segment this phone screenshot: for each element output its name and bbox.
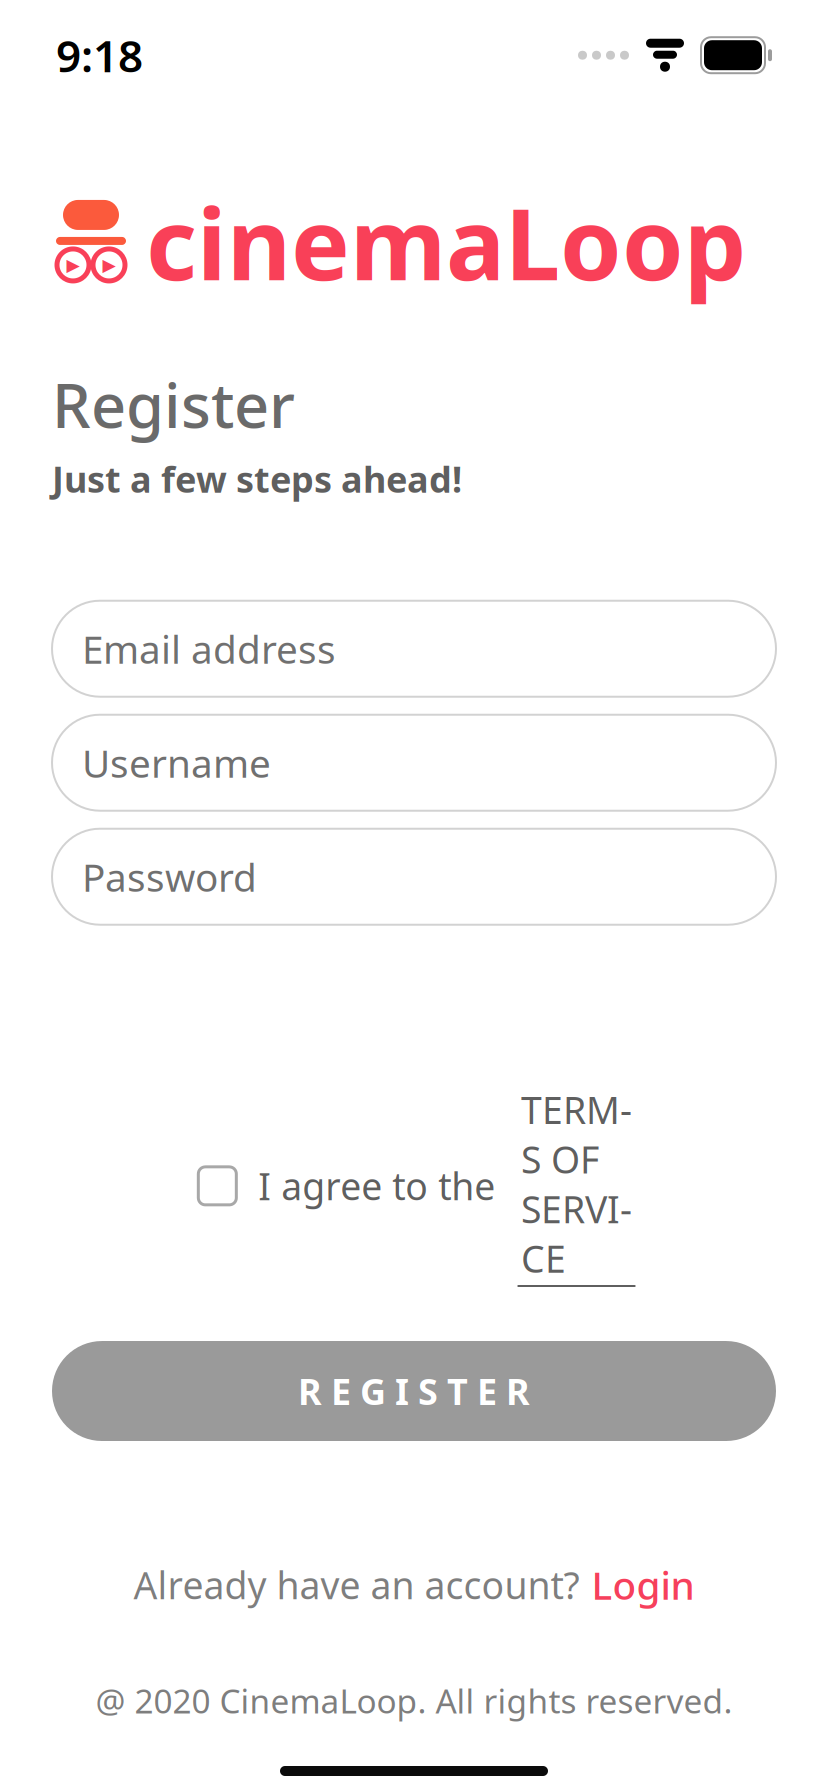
button[interactable]: TERMS OF SERVICE bbox=[495, 1085, 636, 1287]
staticText: 9:18 bbox=[56, 26, 143, 84]
staticText: Register bbox=[52, 363, 295, 445]
staticText: cinemaLoop bbox=[146, 176, 746, 307]
staticText: Email address bbox=[82, 623, 336, 674]
button[interactable]: Agree to terms of service bbox=[192, 1161, 242, 1211]
staticText: ▶ bbox=[66, 255, 79, 275]
staticText: I agree to the bbox=[258, 1161, 495, 1211]
staticText: Just a few steps ahead! bbox=[52, 455, 462, 503]
button[interactable]: Login bbox=[591, 1559, 694, 1610]
staticText: Login bbox=[591, 1559, 694, 1610]
staticText: TERMS OF SERVICE bbox=[521, 1085, 632, 1283]
staticText: R E G I S T E R bbox=[298, 1367, 530, 1415]
staticText: Username bbox=[82, 737, 271, 788]
staticText: ▶ bbox=[102, 255, 115, 275]
button[interactable]: R E G I S T E R bbox=[52, 1341, 776, 1441]
staticText: Password bbox=[82, 851, 257, 902]
staticText: Already have an account? bbox=[133, 1560, 579, 1609]
staticText: @ 2020 CinemaLoop. All rights reserved. bbox=[95, 1678, 732, 1723]
